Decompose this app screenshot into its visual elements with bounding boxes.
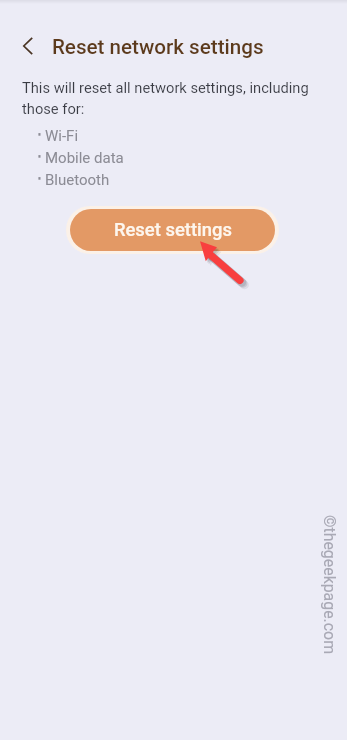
button[interactable]: Back — [14, 32, 42, 60]
staticText: Wi-Fi — [45, 127, 79, 145]
button[interactable]: Reset settings — [70, 209, 275, 251]
staticText: Mobile data — [45, 149, 124, 167]
staticText: Bluetooth — [45, 171, 110, 189]
staticText: This will reset all network settings, in… — [22, 79, 332, 117]
staticText: ©thegeekpage.com — [320, 515, 339, 655]
staticText: Reset network settings — [52, 35, 264, 59]
staticText: Reset settings — [114, 219, 232, 241]
